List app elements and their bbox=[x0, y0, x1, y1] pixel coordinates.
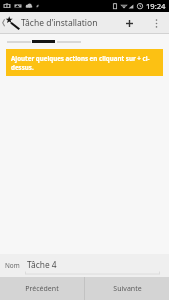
button[interactable]: Précédent bbox=[0, 277, 84, 300]
button[interactable]: Ajouter quelques actions en cliquant sur… bbox=[6, 49, 163, 76]
staticText: Précédent bbox=[25, 284, 59, 294]
staticText: Tâche d'installation bbox=[21, 17, 98, 29]
staticText: Nom bbox=[5, 261, 20, 270]
staticText: Suivante bbox=[113, 284, 142, 294]
staticText: Ajouter quelques actions en cliquant sur… bbox=[11, 54, 155, 72]
staticText: 19:24 bbox=[146, 1, 166, 11]
staticText: Tâche 4 bbox=[27, 259, 57, 270]
button[interactable]: Add action bbox=[118, 12, 140, 34]
button[interactable]: Tâche 4 bbox=[25, 257, 160, 275]
button[interactable]: Navigate up bbox=[0, 12, 21, 34]
button[interactable]: More options bbox=[145, 12, 167, 34]
button[interactable]: Suivante bbox=[85, 277, 169, 300]
